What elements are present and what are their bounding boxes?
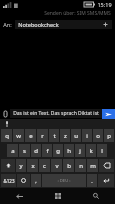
button[interactable]: d (31, 144, 41, 157)
button[interactable]: Start (39, 188, 77, 204)
button[interactable]: e (25, 129, 36, 142)
button[interactable]: g (53, 144, 63, 157)
staticText: q (5, 132, 9, 140)
staticText: i (86, 132, 88, 140)
button[interactable]: Suchen (77, 188, 115, 204)
staticText: m (90, 162, 96, 170)
staticText: p (107, 132, 111, 140)
staticText: o (96, 132, 100, 140)
staticText: u (74, 132, 78, 140)
staticText: Das ist ein Text. Das sprach Diktat ist … (12, 110, 100, 117)
button[interactable]: Kontakt hinzufügen (102, 21, 109, 28)
button[interactable]: &123 (1, 174, 16, 187)
staticText: n (79, 162, 83, 170)
staticText: Senden über: SIM SMS/MMS (44, 10, 111, 17)
staticText: &123 (3, 178, 15, 184)
button[interactable]: . (87, 174, 97, 187)
staticText: x (31, 162, 35, 170)
staticText: f (46, 147, 49, 155)
button[interactable]: b (63, 159, 74, 172)
button[interactable]: Senden (102, 109, 115, 119)
staticText: l (101, 147, 103, 155)
button[interactable]: , (31, 174, 41, 187)
staticText: h (67, 147, 71, 155)
button[interactable]: Notebookcheck (15, 20, 112, 29)
button[interactable]: i (82, 129, 92, 142)
button[interactable]: Löschen (99, 159, 114, 172)
button[interactable]: p (104, 129, 114, 142)
button[interactable]: v (51, 159, 62, 172)
staticText: An: (3, 21, 12, 28)
staticText: y (19, 162, 23, 170)
button[interactable]: x (27, 159, 38, 172)
staticText: b (67, 162, 71, 170)
button[interactable]: z (60, 129, 70, 142)
staticText: c (43, 162, 46, 170)
button[interactable]: Eingabe (98, 174, 114, 187)
button[interactable]: Umschalt (1, 159, 15, 172)
staticText: 15:19 (97, 1, 112, 8)
button[interactable]: j (75, 144, 85, 157)
staticText: g (56, 147, 60, 155)
button[interactable]: t (49, 129, 59, 142)
staticText: v (55, 162, 59, 170)
button[interactable]: l (97, 144, 107, 157)
staticText: j (79, 147, 81, 155)
staticText: ‹ DEU › (57, 178, 71, 184)
button[interactable]: u (71, 129, 81, 142)
button[interactable]: r (37, 129, 48, 142)
staticText: w (16, 132, 21, 140)
button[interactable]: f (42, 144, 52, 157)
button[interactable]: a (7, 144, 18, 157)
staticText: d (34, 147, 38, 155)
button[interactable]: s (19, 144, 30, 157)
staticText: k (89, 147, 93, 155)
button[interactable]: o (93, 129, 103, 142)
staticText: . (91, 177, 93, 184)
button[interactable]: Leertaste (42, 174, 86, 187)
staticText: t (53, 132, 56, 140)
button[interactable]: Anhang (0, 108, 10, 119)
button[interactable]: Emoji (17, 174, 30, 187)
button[interactable]: c (39, 159, 50, 172)
staticText: r (41, 132, 44, 140)
staticText: s (23, 147, 26, 155)
staticText: z (64, 132, 67, 140)
button[interactable]: m (87, 159, 98, 172)
button[interactable]: Zurück (0, 188, 39, 204)
button[interactable]: q (1, 129, 12, 142)
button[interactable]: Diktat (3, 120, 10, 127)
button[interactable]: k (86, 144, 96, 157)
staticText: Notebookcheck (18, 21, 59, 28)
staticText: , (35, 177, 37, 184)
button[interactable]: y (16, 159, 26, 172)
button[interactable]: Das ist ein Text. Das sprach Diktat ist … (10, 109, 102, 118)
staticText: a (11, 147, 15, 155)
button[interactable]: h (64, 144, 74, 157)
button[interactable]: w (13, 129, 24, 142)
staticText: e (29, 132, 33, 140)
button[interactable]: n (75, 159, 86, 172)
